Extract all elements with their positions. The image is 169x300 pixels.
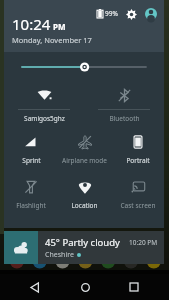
staticText: Sprint <box>22 156 41 165</box>
staticText: Cheshire <box>45 250 74 260</box>
staticText: 10:24 <box>12 14 51 34</box>
staticText: PM <box>53 21 66 32</box>
staticText: 45° Partly cloudy <box>45 236 120 249</box>
button[interactable]: Recent apps <box>120 274 148 300</box>
button[interactable]: User profile <box>143 6 158 21</box>
button[interactable]: Airplane mode <box>58 127 111 172</box>
button[interactable]: Portrait <box>111 127 164 172</box>
button[interactable]: Location <box>58 172 111 217</box>
button[interactable]: Bluetooth <box>84 82 164 127</box>
staticText: Airplane mode <box>62 156 107 165</box>
button[interactable]: Flashlight <box>4 172 58 217</box>
staticText: Portrait <box>126 156 150 165</box>
staticText: Cast screen <box>120 201 156 210</box>
staticText: Samigos5ghz <box>24 114 65 123</box>
staticText: Monday, November 17 <box>12 35 92 45</box>
staticText: 99% <box>105 9 118 18</box>
button[interactable]: 45° Partly cloudy <box>4 231 164 264</box>
button[interactable]: Samigos5ghz <box>4 82 84 127</box>
staticText: Bluetooth <box>109 114 140 123</box>
button[interactable]: Cast screen <box>111 172 164 217</box>
button[interactable]: Brightness <box>4 52 164 82</box>
button[interactable]: Settings <box>124 7 138 21</box>
staticText: Location <box>71 201 98 210</box>
staticText: 10:20 PM <box>129 238 158 247</box>
button[interactable]: Home <box>71 274 99 300</box>
staticText: Flashlight <box>16 201 46 210</box>
button[interactable]: Sprint <box>4 127 58 172</box>
button[interactable]: Back <box>21 274 49 300</box>
